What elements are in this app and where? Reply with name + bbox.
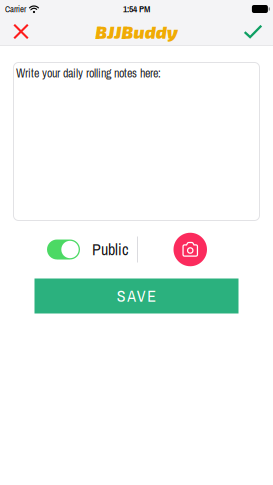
staticText: Public bbox=[92, 239, 129, 260]
button[interactable]: SAVE bbox=[34, 278, 238, 313]
button[interactable]: Attach photo bbox=[138, 232, 217, 266]
button[interactable]: Public bbox=[0, 232, 137, 266]
staticText: 1:54 PM bbox=[123, 3, 150, 15]
staticText: BJJBuddy bbox=[95, 21, 178, 42]
staticText: Carrier bbox=[5, 3, 26, 15]
button[interactable]: Cancel bbox=[4, 18, 38, 45]
staticText: SAVE bbox=[117, 285, 156, 307]
staticText: Write your daily rolling notes here: bbox=[16, 65, 161, 81]
button[interactable]: Save entry bbox=[236, 18, 270, 45]
